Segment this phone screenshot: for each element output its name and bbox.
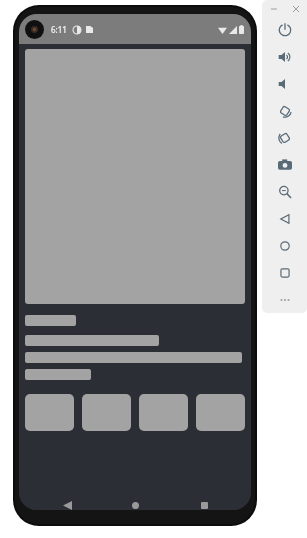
button[interactable]: Home (118, 492, 152, 518)
button[interactable] (82, 394, 131, 431)
button[interactable]: Minimize (268, 3, 279, 14)
button[interactable]: Home (262, 232, 307, 259)
button[interactable]: Close (290, 3, 301, 14)
button[interactable]: Take screenshot (262, 151, 307, 178)
button[interactable]: Overview (262, 259, 307, 286)
button[interactable] (25, 394, 74, 431)
button[interactable]: Volume down (262, 70, 307, 97)
button[interactable]: Zoom (262, 178, 307, 205)
button[interactable]: Recent apps (187, 492, 221, 518)
button[interactable]: Power (262, 16, 307, 43)
staticText: 6:11 (51, 24, 67, 35)
button[interactable]: Back (50, 492, 84, 518)
button[interactable] (139, 394, 188, 431)
button[interactable]: Volume up (262, 43, 307, 70)
button[interactable]: Rotate right (262, 124, 307, 151)
button[interactable]: Back (262, 205, 307, 232)
button[interactable] (196, 394, 245, 431)
button[interactable]: Rotate left (262, 97, 307, 124)
button[interactable]: More (262, 286, 307, 313)
